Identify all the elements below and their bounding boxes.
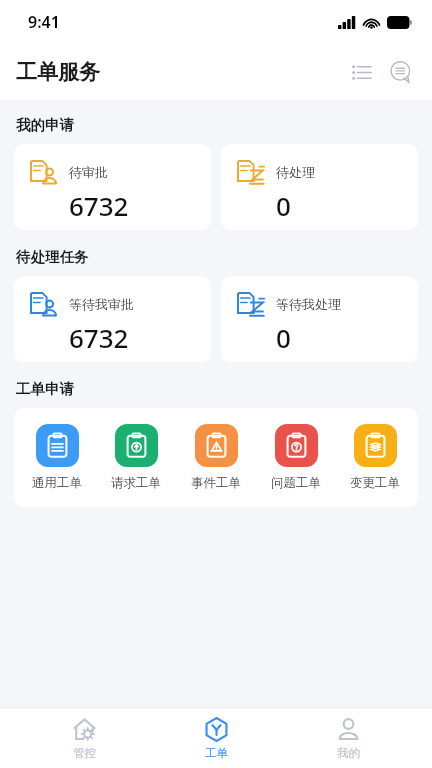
button[interactable]: 待审批 bbox=[14, 144, 211, 230]
staticText: 工单服务 bbox=[16, 59, 100, 85]
button[interactable]: Messages bbox=[384, 55, 418, 89]
staticText: 管控 bbox=[73, 746, 96, 760]
staticText: 0 bbox=[276, 188, 291, 223]
staticText: 通用工单 bbox=[32, 475, 82, 491]
button[interactable]: 等待我审批 bbox=[14, 276, 211, 362]
staticText: 变更工单 bbox=[350, 475, 400, 491]
staticText: 0 bbox=[276, 320, 291, 355]
staticText: 6732 bbox=[69, 188, 129, 223]
button[interactable]: List bbox=[344, 55, 378, 89]
staticText: 待处理 bbox=[276, 164, 315, 180]
staticText: 待审批 bbox=[69, 164, 108, 180]
button[interactable]: 我的 bbox=[300, 708, 396, 768]
staticText: 工单申请 bbox=[16, 380, 74, 398]
button[interactable]: 事件工单 bbox=[179, 422, 253, 493]
button[interactable]: 请求工单 bbox=[99, 422, 173, 493]
staticText: 6732 bbox=[69, 320, 129, 355]
button[interactable]: 变更工单 bbox=[338, 422, 412, 493]
staticText: 9:41 bbox=[28, 11, 60, 33]
staticText: 问题工单 bbox=[271, 475, 321, 491]
staticText: 工单 bbox=[205, 746, 228, 760]
staticText: 等待我处理 bbox=[276, 296, 341, 312]
staticText: 待处理任务 bbox=[16, 248, 89, 266]
staticText: 我的 bbox=[337, 746, 360, 760]
staticText: 等待我审批 bbox=[69, 296, 134, 312]
button[interactable]: 待处理 bbox=[221, 144, 418, 230]
button[interactable]: 工单 bbox=[168, 708, 264, 768]
button[interactable]: 问题工单 bbox=[259, 422, 333, 493]
staticText: 我的申请 bbox=[16, 116, 74, 134]
button[interactable]: 通用工单 bbox=[20, 422, 94, 493]
staticText: 事件工单 bbox=[191, 475, 241, 491]
staticText: 请求工单 bbox=[111, 475, 161, 491]
button[interactable]: 等待我处理 bbox=[221, 276, 418, 362]
button[interactable]: 管控 bbox=[36, 708, 132, 768]
